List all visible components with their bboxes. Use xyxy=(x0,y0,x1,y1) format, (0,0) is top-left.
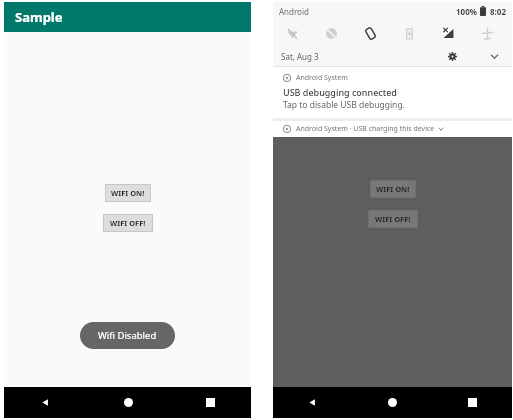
button[interactable]: Battery saver xyxy=(390,20,429,47)
staticText: Sat, Aug 3 xyxy=(281,51,319,62)
button[interactable]: Back xyxy=(273,387,352,418)
button[interactable]: Expand xyxy=(484,47,504,66)
staticText: WIFI OFF! xyxy=(110,218,146,228)
button[interactable]: Wifi Disabled xyxy=(80,322,175,349)
staticText: USB debugging connected xyxy=(283,86,397,98)
staticText: Android System · USB charging this devic… xyxy=(296,124,435,134)
staticText: WIFI ON! xyxy=(376,184,410,194)
button[interactable]: Recents xyxy=(169,387,251,418)
staticText: 8:02 xyxy=(490,6,506,17)
staticText: WIFI OFF! xyxy=(375,214,411,224)
button[interactable]: Mobile data off xyxy=(429,20,468,47)
button[interactable]: WIFI OFF! xyxy=(104,215,152,231)
button[interactable]: Wi-Fi off xyxy=(273,20,312,47)
button[interactable]: Back xyxy=(4,387,87,418)
button[interactable]: WIFI ON! xyxy=(371,181,415,197)
staticText: Android xyxy=(279,6,309,17)
button[interactable]: Recents xyxy=(432,387,512,418)
button[interactable]: Bluetooth off xyxy=(312,20,351,47)
button[interactable]: Settings xyxy=(442,47,462,66)
button[interactable]: WIFI ON! xyxy=(106,185,150,201)
button[interactable]: Android System · USB charging this devic… xyxy=(273,121,512,137)
button[interactable]: Home xyxy=(87,387,169,418)
staticText: Tap to disable USB debugging. xyxy=(283,99,405,111)
button[interactable]: Android System xyxy=(273,67,512,118)
staticText: Android System xyxy=(296,73,348,83)
button[interactable]: Airplane mode xyxy=(468,20,507,47)
staticText: Sample xyxy=(15,8,63,26)
button[interactable]: Home xyxy=(352,387,432,418)
button[interactable]: WIFI OFF! xyxy=(369,211,417,227)
staticText: 100% xyxy=(456,6,477,17)
staticText: Wifi Disabled xyxy=(98,329,157,342)
button[interactable]: Auto rotate xyxy=(351,20,390,47)
staticText: WIFI ON! xyxy=(111,188,145,198)
